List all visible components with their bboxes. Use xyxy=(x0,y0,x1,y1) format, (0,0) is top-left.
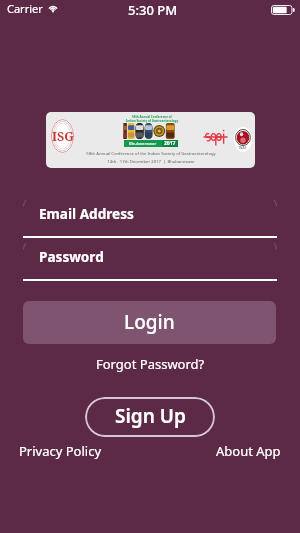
staticText: About App xyxy=(216,442,281,460)
staticText: Sign Up xyxy=(115,403,186,429)
staticText: Forgot Password? xyxy=(96,355,205,373)
staticText: Indian Society of Gastroenterology xyxy=(126,119,179,123)
button[interactable]: Privacy Policy xyxy=(19,440,102,462)
staticText: 14th - 17th December 2017 | Bhubaneswar xyxy=(107,159,195,165)
button[interactable]: Sign Up xyxy=(85,397,215,437)
staticText: Bhubaneswar xyxy=(129,141,157,147)
staticText: Login xyxy=(124,309,175,335)
staticText: 58th Annual Conference of the Indian Soc… xyxy=(86,151,216,157)
button[interactable]: Forgot Password? xyxy=(88,351,213,377)
staticText: Email Address xyxy=(39,204,134,223)
staticText: Privacy Policy xyxy=(19,442,102,460)
button[interactable]: About App xyxy=(216,440,281,462)
staticText: ISG xyxy=(52,128,74,145)
staticText: Carrier xyxy=(7,1,43,16)
button[interactable]: Login xyxy=(23,301,276,344)
staticText: 2017 xyxy=(164,140,176,147)
staticText: 5:30 PM xyxy=(128,1,178,19)
other: Wi-Fi xyxy=(48,2,58,13)
staticText: Password xyxy=(39,247,104,266)
button[interactable]: Password xyxy=(23,239,277,281)
other: Battery xyxy=(271,5,295,15)
staticText: 58th Annual Conference of xyxy=(132,115,172,119)
button[interactable]: Email Address xyxy=(23,196,277,238)
staticText: INAS xyxy=(239,146,247,150)
